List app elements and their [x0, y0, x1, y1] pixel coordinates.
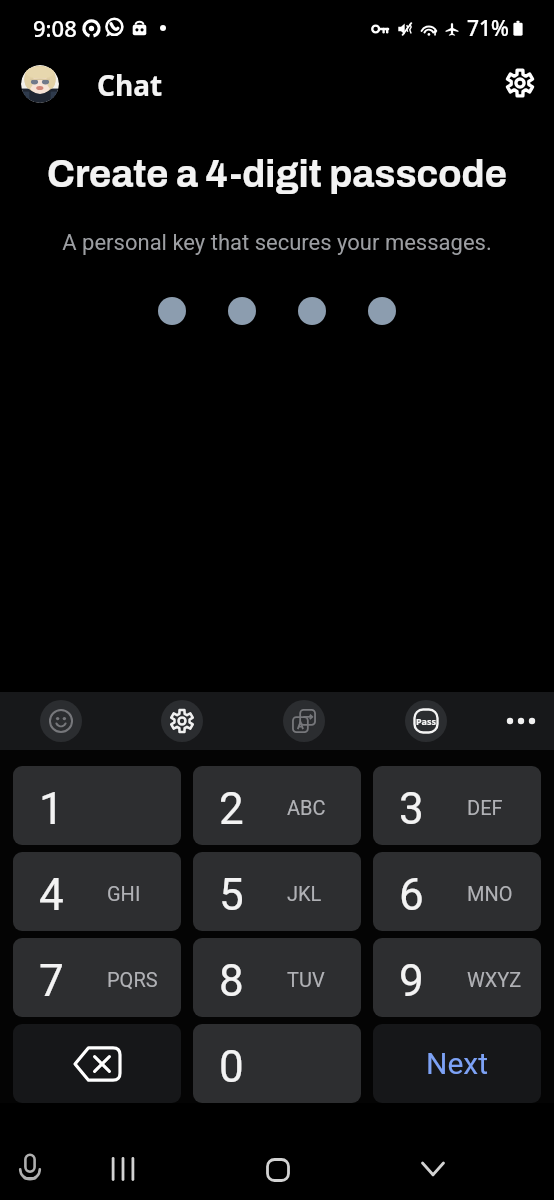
button[interactable]: 7 [13, 938, 181, 1017]
button[interactable]: 9 [373, 938, 541, 1017]
button[interactable]: Passwords [405, 700, 447, 742]
button[interactable]: Hide keyboard [409, 1145, 457, 1193]
staticText: 71% [467, 14, 509, 43]
button[interactable]: Profile [13, 57, 67, 111]
button[interactable]: Keyboard action [40, 700, 82, 742]
staticText: 4 [39, 869, 64, 921]
button[interactable]: Home [254, 1146, 302, 1194]
staticText: PQRS [107, 968, 158, 991]
staticText: DEF [467, 796, 503, 819]
button[interactable]: Settings [495, 58, 545, 108]
staticText: JKL [287, 882, 322, 905]
staticText: WXYZ [467, 968, 522, 991]
staticText: Pass [416, 715, 437, 727]
staticText: A personal key that secures your message… [0, 230, 554, 256]
button[interactable]: Next [373, 1024, 541, 1103]
button[interactable]: Recent apps [99, 1145, 147, 1193]
button[interactable]: 8 [193, 938, 361, 1017]
staticText: 9 [399, 955, 424, 1007]
button[interactable]: 1 [13, 766, 181, 845]
staticText: 1 [39, 783, 64, 835]
staticText: 8 [219, 955, 244, 1007]
button[interactable]: 0 [193, 1024, 361, 1103]
button[interactable]: 4 [13, 852, 181, 931]
staticText: Next [426, 1046, 489, 1081]
button[interactable]: 2 [193, 766, 361, 845]
staticText: MNO [467, 882, 513, 905]
staticText: Create a 4-digit passcode [0, 154, 554, 195]
staticText: 5 [219, 869, 244, 921]
staticText: 6 [399, 869, 424, 921]
button[interactable]: Backspace [13, 1024, 181, 1103]
staticText: 2 [219, 783, 244, 835]
button[interactable]: 3 [373, 766, 541, 845]
staticText: 0 [219, 1041, 244, 1093]
button[interactable]: Keyboard action [283, 700, 325, 742]
button[interactable]: More options [500, 700, 542, 742]
staticText: 9:08 [33, 13, 77, 43]
staticText: TUV [287, 968, 325, 991]
button[interactable]: Voice input [6, 1143, 54, 1191]
staticText: GHI [107, 882, 141, 905]
staticText: 7 [39, 955, 64, 1007]
staticText: ABC [287, 796, 326, 819]
staticText: 3 [399, 783, 424, 835]
button[interactable]: 5 [193, 852, 361, 931]
button[interactable]: Keyboard action [161, 700, 203, 742]
button[interactable]: 6 [373, 852, 541, 931]
staticText: Chat [97, 66, 163, 104]
